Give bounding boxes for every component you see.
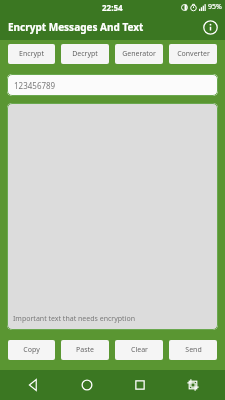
staticText: Encrypt (19, 49, 44, 59)
staticText: Paste (76, 345, 94, 355)
button[interactable]: Paste (61, 340, 109, 360)
button[interactable]: Converter (169, 44, 217, 64)
button[interactable]: Back (6, 370, 60, 400)
staticText: Converter (177, 49, 210, 59)
staticText: Generator (122, 49, 156, 59)
staticText: Clear (131, 345, 148, 355)
button[interactable]: Clear (115, 340, 163, 360)
button[interactable]: Information (199, 16, 221, 38)
button[interactable]: Copy (8, 340, 55, 360)
button[interactable]: Recents (113, 370, 166, 400)
staticText: 95% (208, 2, 222, 12)
staticText: Copy (23, 345, 40, 355)
staticText: Important text that needs encryption (13, 314, 135, 324)
button[interactable]: Screenshot (166, 370, 219, 400)
button[interactable]: Decrypt (61, 44, 109, 64)
staticText: 22:54 (102, 2, 123, 13)
button[interactable]: Send (169, 340, 217, 360)
button[interactable]: Home (60, 370, 113, 400)
staticText: 123456789 (14, 80, 56, 91)
staticText: Decrypt (72, 49, 98, 59)
staticText: Send (185, 345, 202, 355)
button[interactable]: Generator (115, 44, 163, 64)
staticText: Encrypt Messages And Text (8, 20, 144, 34)
button[interactable]: Encrypt (8, 44, 55, 64)
button[interactable]: Important text that needs encryption (7, 103, 218, 330)
button[interactable]: 123456789 (7, 74, 218, 96)
